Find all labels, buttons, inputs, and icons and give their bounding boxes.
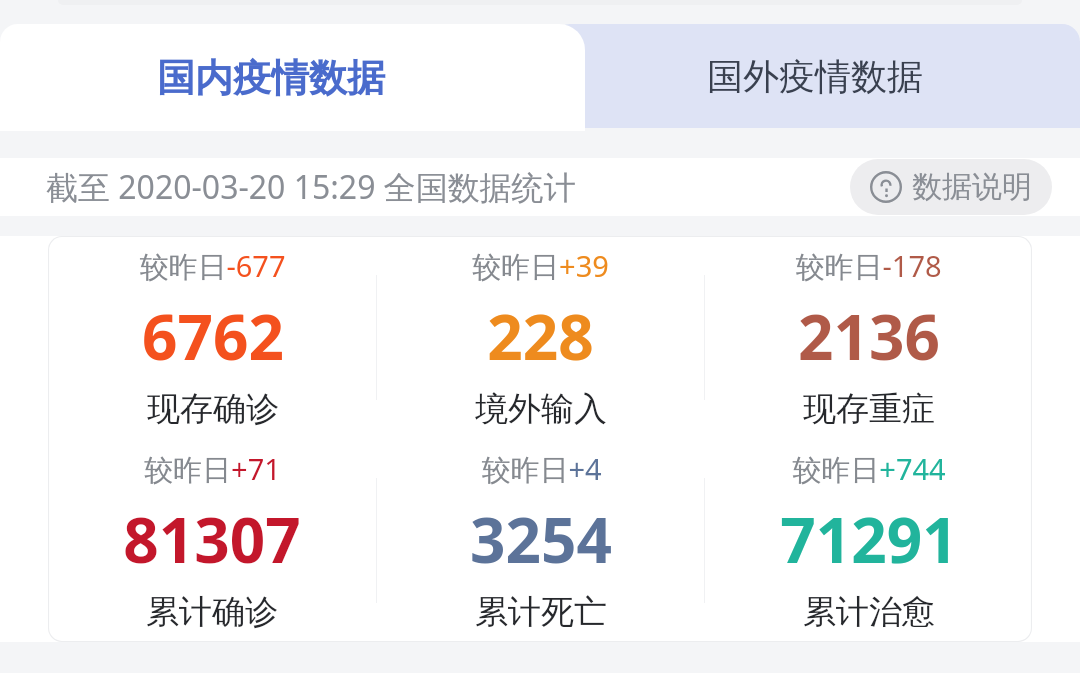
button[interactable]: 较昨日-178 [705,236,1032,439]
staticText: 71291 [780,497,958,581]
button[interactable]: 较昨日+71 [48,439,376,642]
staticText: 境外输入 [475,388,607,430]
staticText: 较昨日+744 [792,449,946,489]
staticText: 国外疫情数据 [707,54,923,99]
staticText: 累计确诊 [146,591,278,633]
button[interactable]: Data explanation [850,159,1052,215]
staticText: 数据说明 [912,168,1032,206]
button[interactable]: 较昨日-677 [48,236,376,439]
staticText: 截至 2020-03-20 15:29 全国数据统计 [46,165,576,209]
staticText: 较昨日-178 [795,246,942,286]
staticText: 现存确诊 [147,388,279,430]
button[interactable]: 国内疫情数据 [0,24,585,131]
staticText: 2136 [798,294,940,378]
staticText: 6762 [142,294,284,378]
staticText: 81307 [123,497,301,581]
button[interactable]: 国外疫情数据 [550,24,1080,128]
staticText: 较昨日+4 [481,449,602,489]
other: Data explanation [870,171,902,203]
staticText: 较昨日-677 [139,246,286,286]
staticText: 累计治愈 [803,591,935,633]
staticText: 现存重症 [803,388,935,430]
staticText: 3254 [470,497,612,581]
staticText: 累计死亡 [475,591,607,633]
button[interactable]: 较昨日+4 [377,439,704,642]
staticText: 较昨日+71 [144,449,281,489]
staticText: 国内疫情数据 [157,54,385,102]
staticText: 较昨日+39 [472,246,609,286]
button[interactable]: 较昨日+39 [377,236,704,439]
staticText: 228 [487,294,594,378]
button[interactable]: 较昨日+744 [705,439,1032,642]
